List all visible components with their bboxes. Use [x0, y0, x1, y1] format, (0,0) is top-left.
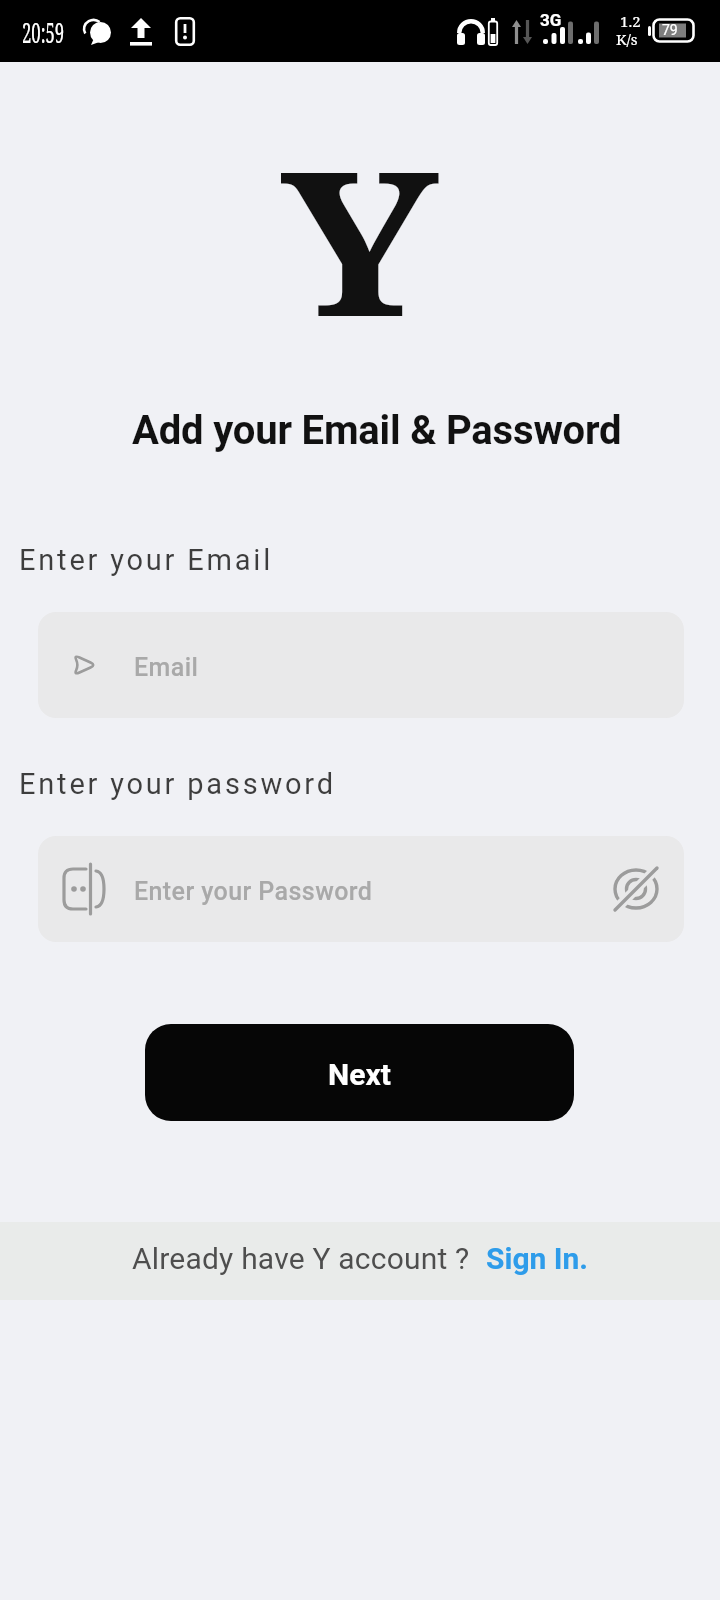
button[interactable]: Sign In.: [486, 1241, 589, 1276]
staticText: Next: [328, 1057, 391, 1092]
button[interactable]: Enter your Password: [38, 836, 684, 942]
staticText: Add your Email & Password: [132, 407, 622, 454]
staticText: Enter your Email: [19, 543, 274, 577]
staticText: Y: [281, 101, 439, 331]
button[interactable]: Email: [38, 612, 684, 718]
staticText: Already have Y account ?: [132, 1241, 470, 1276]
staticText: 1.2: [620, 11, 641, 31]
staticText: 20:59: [22, 14, 65, 51]
staticText: K/s: [616, 29, 638, 49]
staticText: 79: [662, 22, 678, 38]
button[interactable]: Next: [145, 1024, 574, 1121]
button[interactable]: [612, 865, 660, 913]
staticText: Email: [134, 653, 199, 682]
staticText: Sign In.: [486, 1241, 589, 1276]
staticText: Enter your password: [19, 767, 336, 801]
staticText: Enter your Password: [134, 877, 373, 906]
staticText: 3G: [540, 10, 562, 30]
